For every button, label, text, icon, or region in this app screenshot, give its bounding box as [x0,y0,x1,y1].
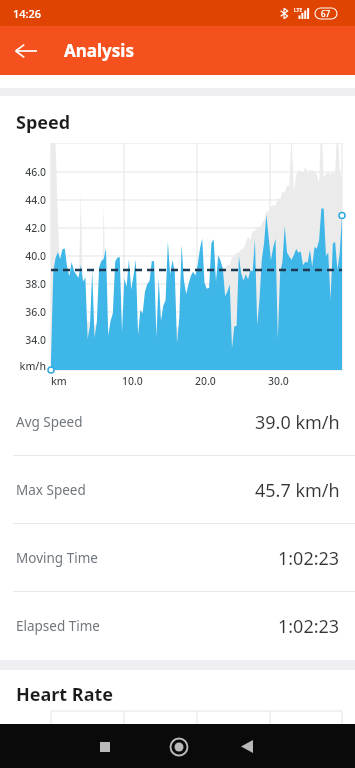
button[interactable]: Home [157,725,200,768]
staticText: Moving Time [16,549,98,567]
staticText: 36.0 [12,305,46,319]
staticText: 67 [321,8,331,19]
staticText: Analysis [64,39,134,62]
staticText: 34.0 [12,333,46,347]
button[interactable]: Max Speed [0,456,355,524]
staticText: Elapsed Time [16,617,100,635]
button[interactable]: Back [225,725,268,768]
staticText: km/h [12,359,46,373]
staticText: 14:26 [13,6,42,21]
staticText: 42.0 [12,221,46,235]
button[interactable]: Avg Speed [0,388,355,456]
button[interactable]: Back [0,26,52,75]
staticText: LTE [294,7,303,14]
staticText: 39.0 km/h [255,410,340,435]
staticText: 1:02:23 [278,546,340,571]
staticText: 45.7 km/h [255,478,340,503]
staticText: 10.0 [122,374,143,388]
staticText: km [51,374,67,388]
staticText: Max Speed [16,481,86,499]
staticText: 46.0 [12,165,46,179]
staticText: 38.0 [12,277,46,291]
staticText: 1:02:23 [278,614,340,639]
staticText: Heart Rate [16,682,113,707]
staticText: 44.0 [12,193,46,207]
staticText: 30.0 [268,374,289,388]
button[interactable]: Moving Time [0,524,355,592]
staticText: 20.0 [195,374,216,388]
staticText: 40.0 [12,249,46,263]
staticText: Avg Speed [16,413,83,431]
button[interactable]: Recents [83,725,126,768]
button[interactable]: Elapsed Time [0,592,355,660]
staticText: Speed [16,110,71,135]
